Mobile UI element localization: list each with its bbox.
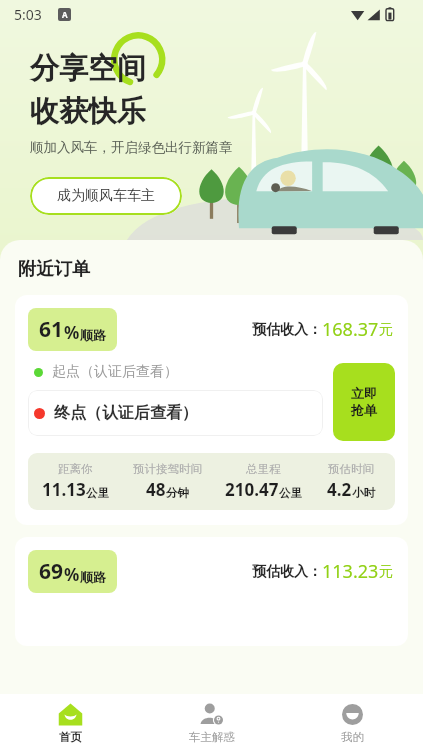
staticText: 首页 xyxy=(59,730,82,744)
staticText: 168.37 xyxy=(322,317,379,342)
staticText: 顺加入风车，开启绿色出行新篇章 xyxy=(30,139,233,156)
staticText: 附近订单 xyxy=(18,258,90,281)
staticText: 距离你 xyxy=(58,462,93,476)
staticText: 69 xyxy=(39,557,64,586)
staticText: 5:03 xyxy=(14,5,42,24)
staticText: 立即抢单 xyxy=(349,385,379,419)
staticText: 48 xyxy=(146,478,166,501)
staticText: A xyxy=(62,9,68,20)
staticText: 预估时间 xyxy=(328,462,374,476)
staticText: 起点（认证后查看） xyxy=(52,363,178,381)
staticText: 成为顺风车车主 xyxy=(57,187,155,205)
staticText: % xyxy=(64,321,80,344)
staticText: 预估收入： xyxy=(252,321,322,339)
button[interactable]: 我的 xyxy=(282,694,423,752)
staticText: 公里 xyxy=(279,486,302,500)
staticText: 61 xyxy=(39,315,64,344)
staticText: 113.23 xyxy=(322,559,379,584)
staticText: 车主解惑 xyxy=(189,730,235,744)
staticText: 顺路 xyxy=(80,327,106,343)
button[interactable]: 61 xyxy=(15,295,408,525)
staticText: 我的 xyxy=(341,730,364,744)
button[interactable]: 终点（认证后查看） xyxy=(34,390,323,436)
button[interactable]: 首页 xyxy=(0,694,141,752)
staticText: 210.47 xyxy=(225,478,279,501)
staticText: % xyxy=(64,563,80,586)
button[interactable]: 立即抢单 xyxy=(333,363,395,441)
staticText: 分钟 xyxy=(166,486,189,500)
staticText: 终点（认证后查看） xyxy=(54,403,198,423)
staticText: 4.2 xyxy=(327,478,352,501)
button[interactable]: 车主解惑 xyxy=(141,694,282,752)
staticText: 收获快乐 xyxy=(30,93,146,130)
staticText: 顺路 xyxy=(80,569,106,585)
staticText: 小时 xyxy=(352,486,375,500)
staticText: 预计接驾时间 xyxy=(133,462,202,476)
button[interactable]: 成为顺风车车主 xyxy=(30,177,182,215)
button[interactable]: 69 xyxy=(15,537,408,646)
staticText: 11.13 xyxy=(42,478,86,501)
staticText: 分享空间 xyxy=(30,50,146,87)
staticText: 公里 xyxy=(86,486,109,500)
staticText: 总里程 xyxy=(246,462,281,476)
staticText: 元 xyxy=(379,563,393,581)
staticText: 预估收入： xyxy=(252,563,322,581)
staticText: 元 xyxy=(379,321,393,339)
